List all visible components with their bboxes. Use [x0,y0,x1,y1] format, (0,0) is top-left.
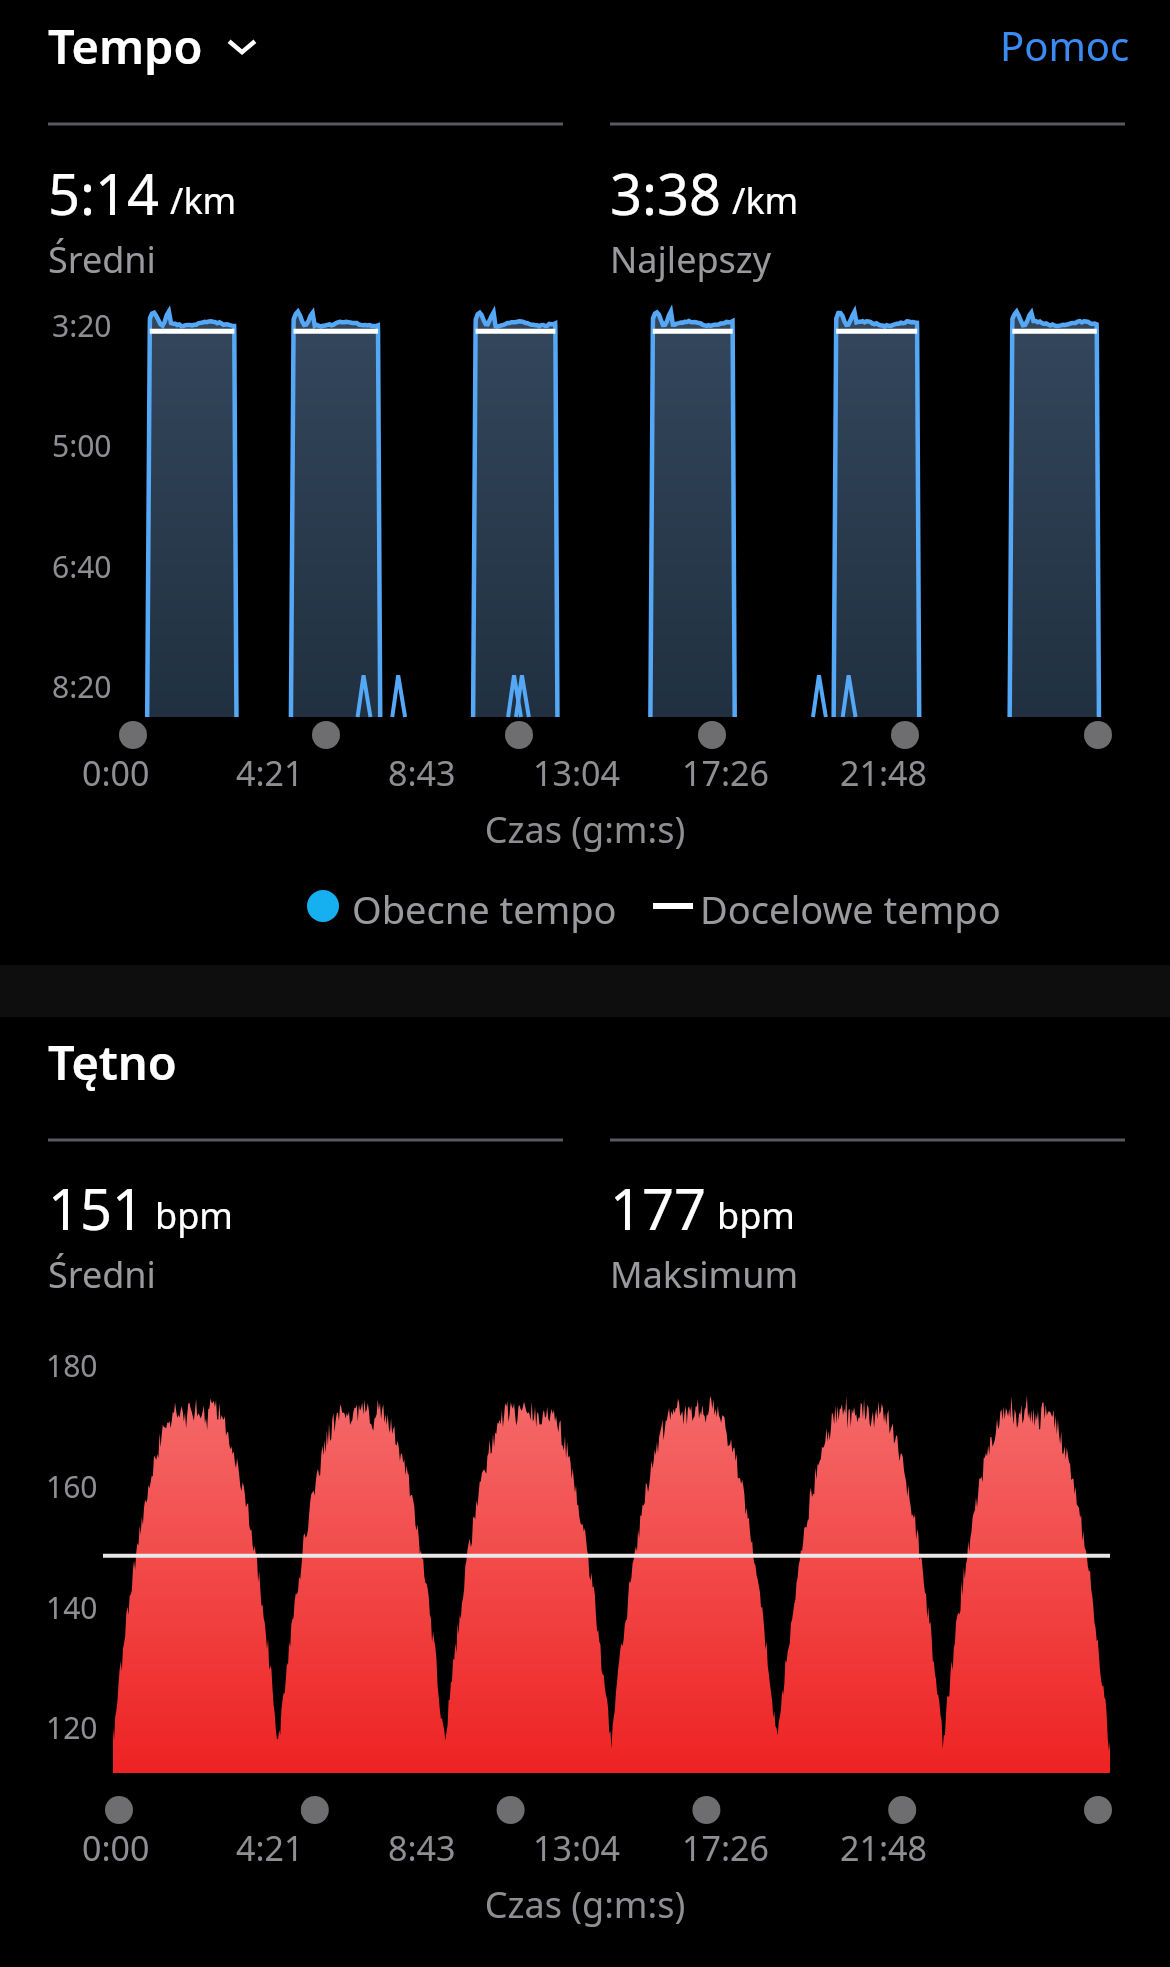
staticText: bpm [717,1191,795,1240]
staticText: 8:43 [388,750,456,796]
button[interactable]: 151 [48,1170,233,1299]
staticText: 3:20 [52,305,112,346]
button[interactable]: Obecne tempo [352,883,617,935]
staticText: Maksimum [610,1250,799,1299]
staticText: Czas (g:m:s) [0,1880,1170,1929]
staticText: Tempo [48,14,203,78]
staticText: 160 [46,1466,98,1507]
staticText: 3:38 [610,155,722,231]
staticText: 17:26 [682,1825,769,1871]
staticText: 21:48 [840,1825,927,1871]
staticText: /km [732,176,799,225]
button[interactable]: Tempo [48,14,259,78]
staticText: Tętno [48,1030,177,1094]
staticText: Czas (g:m:s) [0,805,1170,854]
staticText: Obecne tempo [352,883,617,935]
staticText: 0:00 [82,750,150,796]
button[interactable]: Docelowe tempo [700,883,1001,935]
button[interactable]: 177 [610,1170,799,1299]
staticText: 140 [46,1587,98,1628]
staticText: 5:00 [52,425,112,466]
staticText: 4:21 [236,750,304,796]
staticText: 13:04 [533,750,620,796]
staticText: 151 [48,1170,145,1246]
staticText: 177 [610,1170,707,1246]
staticText: 8:43 [388,1825,456,1871]
staticText: bpm [155,1191,233,1240]
staticText: 21:48 [840,750,927,796]
button[interactable]: 3:38 [610,155,799,284]
staticText: Najlepszy [610,235,772,284]
staticText: 8:20 [52,666,112,707]
staticText: /km [170,176,237,225]
staticText: 5:14 [48,155,160,231]
staticText: 180 [46,1345,98,1386]
button[interactable]: 5:14 [48,155,237,284]
staticText: Średni [48,235,156,284]
staticText: Średni [48,1250,156,1299]
staticText: 17:26 [682,750,769,796]
button[interactable]: Pomoc [1000,18,1130,72]
staticText: 120 [46,1707,98,1748]
staticText: 13:04 [533,1825,620,1871]
staticText: Docelowe tempo [700,883,1001,935]
staticText: 0:00 [82,1825,150,1871]
staticText: 6:40 [52,546,112,587]
staticText: 4:21 [236,1825,304,1871]
staticText: Pomoc [1000,18,1130,72]
